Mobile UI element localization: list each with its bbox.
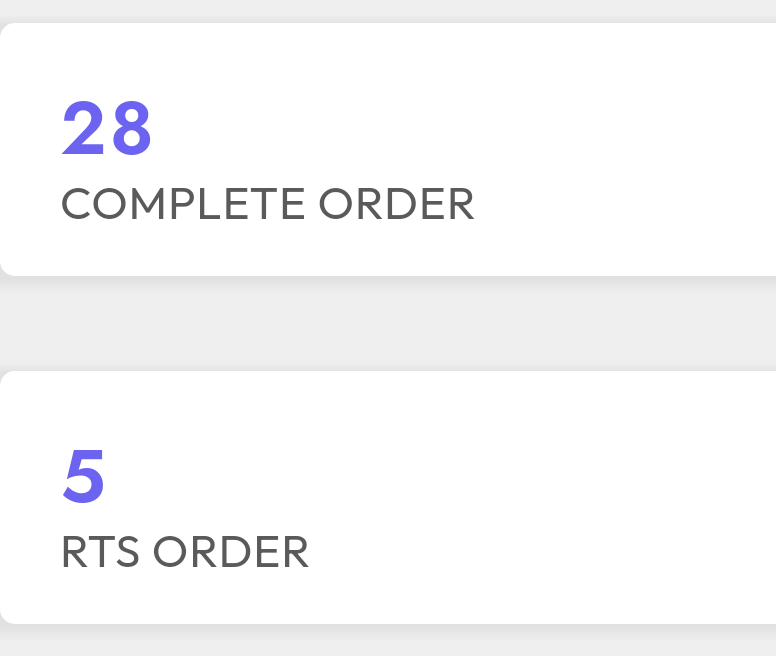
staticText: COMPLETE ORDER [60, 173, 477, 231]
staticText: 28 [60, 75, 158, 182]
button[interactable]: 5 [0, 371, 776, 624]
button[interactable]: 28 [0, 23, 776, 276]
staticText: RTS ORDER [60, 521, 312, 579]
staticText: 5 [60, 423, 109, 530]
